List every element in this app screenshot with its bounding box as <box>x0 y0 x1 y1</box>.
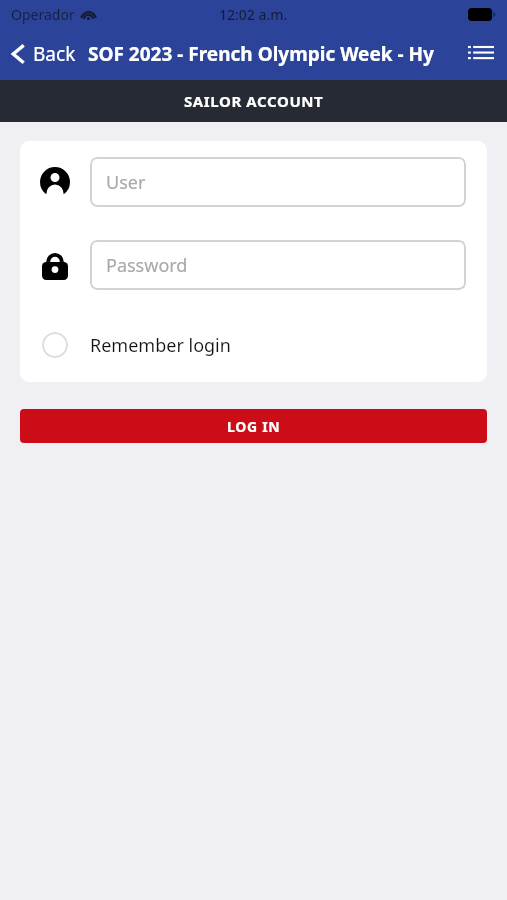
button[interactable]: LOG IN <box>20 409 487 443</box>
staticText: Operador <box>11 5 75 24</box>
staticText: SAILOR ACCOUNT <box>184 91 324 111</box>
staticText: 12:02 a.m. <box>219 5 288 24</box>
button[interactable]: Back <box>0 28 80 80</box>
staticText: Remember login <box>90 333 231 358</box>
button[interactable]: Remember login <box>20 320 487 370</box>
staticText: User <box>106 170 146 195</box>
button[interactable]: Menu <box>455 28 507 80</box>
button[interactable]: Password <box>90 240 466 290</box>
staticText: SOF 2023 - French Olympic Week - Hy <box>88 41 434 67</box>
staticText: LOG IN <box>227 417 281 436</box>
staticText: Password <box>106 253 188 278</box>
staticText: Back <box>33 41 76 67</box>
button[interactable]: User <box>90 157 466 207</box>
